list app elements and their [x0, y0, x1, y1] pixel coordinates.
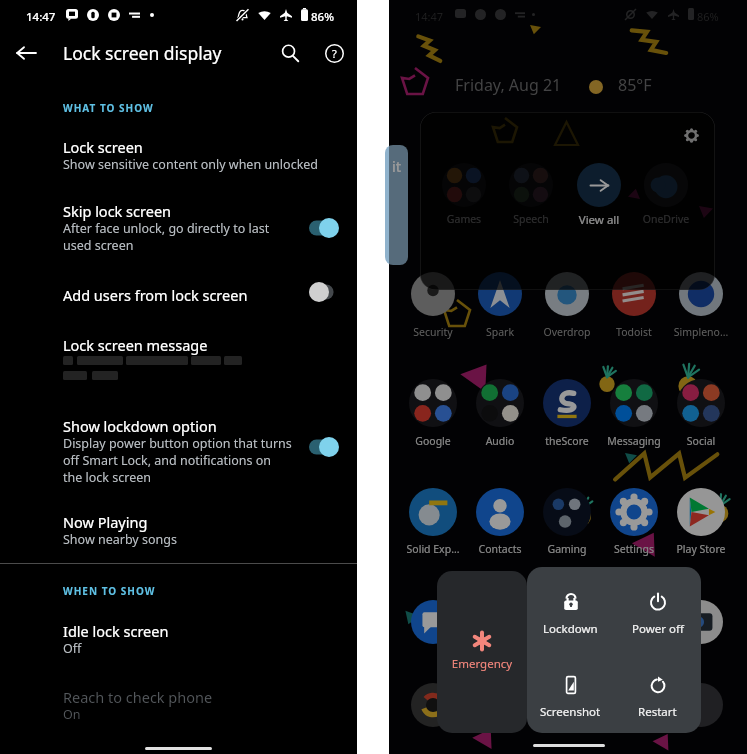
staticText: theScore [534, 434, 600, 448]
staticText: After face unlock, go directly to last [63, 220, 270, 237]
staticText: Lock screen message [63, 335, 208, 355]
staticText: Show sensitive content only when unlocke… [63, 156, 319, 173]
staticText: 14:47 [26, 9, 56, 25]
button[interactable]: Gaming [534, 484, 600, 554]
staticText: Audio [467, 434, 533, 448]
button[interactable]: Search [270, 33, 310, 73]
button[interactable]: Contacts [467, 484, 533, 554]
staticText: Skip lock screen [63, 201, 172, 221]
staticText: Lock screen [63, 137, 143, 157]
staticText: Security [400, 325, 466, 339]
button[interactable]: Google [400, 375, 466, 445]
button[interactable]: Restart [614, 650, 701, 733]
button[interactable]: App [668, 679, 734, 749]
button[interactable]: Show lockdown option toggle [298, 434, 350, 460]
button[interactable]: Spark [467, 268, 533, 338]
staticText: Overdrop [534, 325, 600, 339]
button[interactable]: App [601, 679, 667, 749]
button[interactable]: Lock screen message [0, 335, 357, 396]
button[interactable]: Overdrop [534, 268, 600, 338]
button[interactable]: Side tab [385, 145, 408, 265]
staticText: Messaging [601, 434, 667, 448]
staticText: Settings [601, 542, 667, 556]
button[interactable]: App [534, 679, 600, 749]
button[interactable]: View all [566, 163, 632, 235]
button[interactable]: Widget settings [677, 121, 705, 149]
staticText: Restart [638, 704, 677, 720]
staticText: Play Store [668, 542, 734, 556]
button[interactable]: Simpleno… [668, 268, 734, 338]
staticText: Lock screen display [63, 41, 222, 65]
staticText: used screen [63, 237, 134, 254]
button[interactable]: Games [420, 112, 715, 290]
staticText: Emergency [437, 656, 527, 672]
staticText: 14:47 [415, 9, 444, 24]
button[interactable]: Skip lock screen toggle [298, 215, 350, 241]
button[interactable]: Screenshot [527, 650, 614, 733]
staticText: it [392, 157, 402, 176]
staticText: WHAT TO SHOW [63, 101, 154, 115]
button[interactable]: App [668, 596, 734, 666]
button[interactable]: theScore [534, 375, 600, 445]
button[interactable]: Skip lock screen [0, 201, 357, 262]
staticText: Social [668, 434, 734, 448]
staticText: Lockdown [543, 621, 598, 637]
staticText: Add users from lock screen [63, 285, 248, 305]
button[interactable]: Emergency [437, 571, 527, 733]
staticText: OneDrive [633, 212, 699, 226]
button[interactable]: App [400, 596, 466, 666]
staticText: Contacts [467, 542, 533, 556]
staticText: Off [63, 640, 82, 657]
staticText: Gaming [534, 542, 600, 556]
staticText: 86% [697, 9, 719, 24]
staticText: Reach to check phone [63, 687, 213, 707]
staticText: Todoist [601, 325, 667, 339]
button[interactable]: Add users from lock screen toggle [298, 279, 350, 305]
button[interactable]: Reach to check phone [0, 687, 357, 731]
button[interactable]: Social [668, 375, 734, 445]
staticText: 86% [311, 9, 334, 25]
button[interactable]: Messaging [601, 375, 667, 445]
button[interactable]: Play Store [668, 484, 734, 554]
button[interactable]: Security [400, 268, 466, 338]
button[interactable]: App [534, 596, 600, 666]
staticText: 85°F [618, 74, 652, 96]
staticText: On [63, 706, 81, 723]
staticText: ? [332, 46, 337, 61]
button[interactable]: Back [6, 33, 46, 73]
staticText: off Smart Lock, and notifications on [63, 452, 272, 469]
staticText: Idle lock screen [63, 621, 169, 641]
button[interactable]: Audio [467, 375, 533, 445]
staticText: Show lockdown option [63, 416, 217, 436]
staticText: Solid Exp… [400, 542, 466, 556]
staticText: Display power button option that turns [63, 435, 292, 452]
staticText: Friday, Aug 21 [455, 74, 562, 96]
button[interactable]: Lockdown [527, 567, 614, 650]
button[interactable]: App [400, 679, 466, 749]
button[interactable]: Settings [601, 484, 667, 554]
staticText: Games [431, 212, 497, 226]
button[interactable]: Add users from lock screen [0, 285, 357, 312]
staticText: Speech [498, 212, 564, 226]
staticText: Screenshot [540, 704, 601, 720]
button[interactable]: Help [314, 33, 354, 73]
button[interactable]: App [467, 679, 533, 749]
staticText: Now Playing [63, 512, 148, 532]
button[interactable]: Power off [614, 567, 701, 650]
staticText: WHEN TO SHOW [63, 584, 156, 598]
button[interactable]: App [467, 596, 533, 666]
button[interactable]: Solid Exp… [400, 484, 466, 554]
button[interactable]: Now Playing [0, 512, 357, 556]
staticText: View all [566, 212, 632, 228]
button[interactable]: Todoist [601, 268, 667, 338]
staticText: the lock screen [63, 469, 151, 486]
button[interactable]: Show lockdown option [0, 416, 357, 494]
staticText: Power off [632, 621, 684, 637]
button[interactable]: App [601, 596, 667, 666]
button[interactable]: Lock screen [0, 137, 357, 181]
staticText: Spark [467, 325, 533, 339]
staticText: Show nearby songs [63, 531, 177, 548]
staticText: Simpleno… [668, 325, 734, 339]
button[interactable]: Idle lock screen [0, 621, 357, 665]
staticText: Google [400, 434, 466, 448]
